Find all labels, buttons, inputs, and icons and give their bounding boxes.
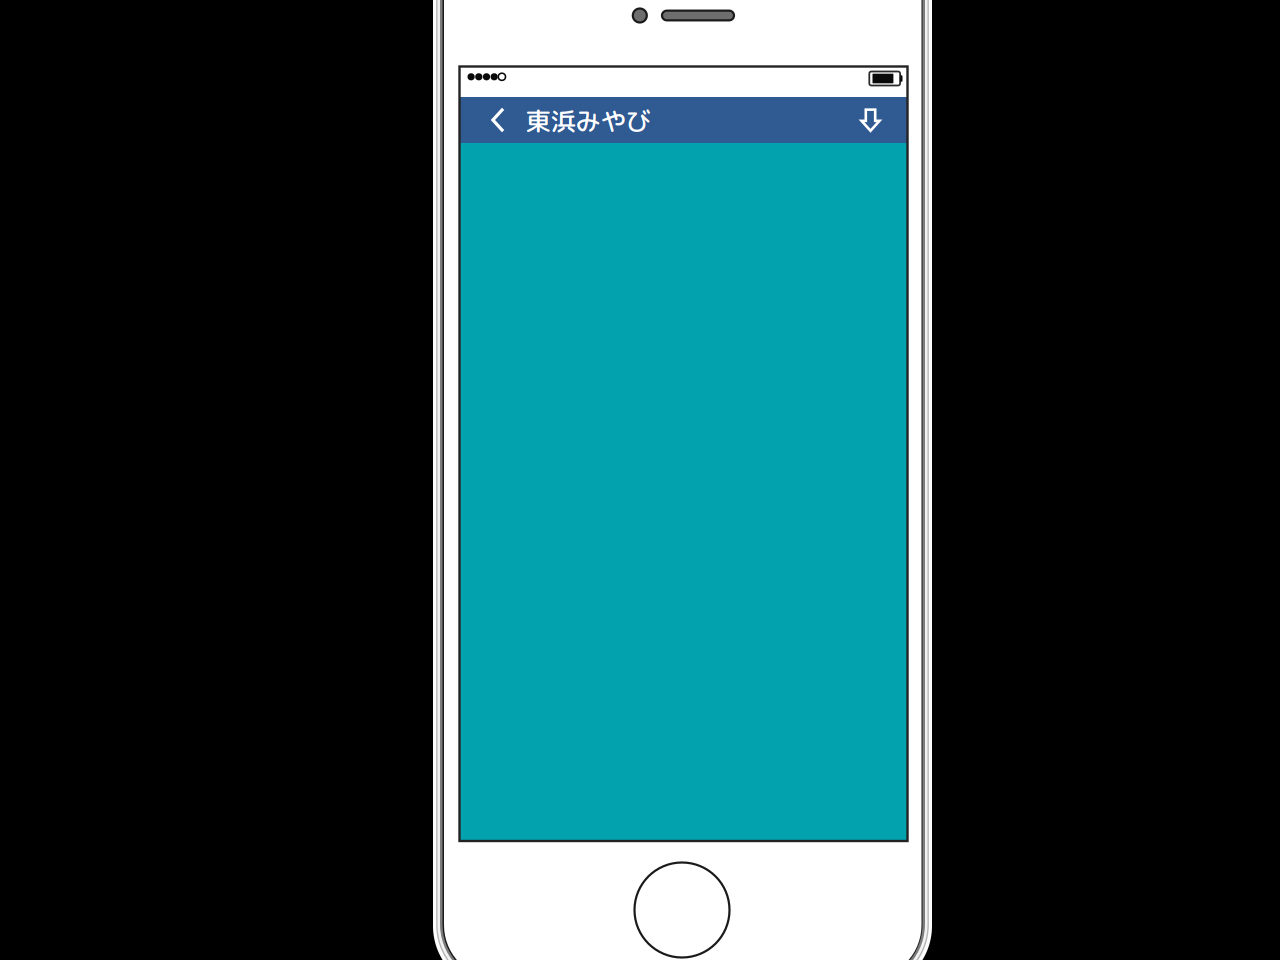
staticText: 東浜みやび	[525, 103, 650, 139]
button[interactable]: Home	[634, 862, 729, 957]
button[interactable]: Back	[476, 97, 518, 143]
button[interactable]: Download	[849, 97, 891, 143]
